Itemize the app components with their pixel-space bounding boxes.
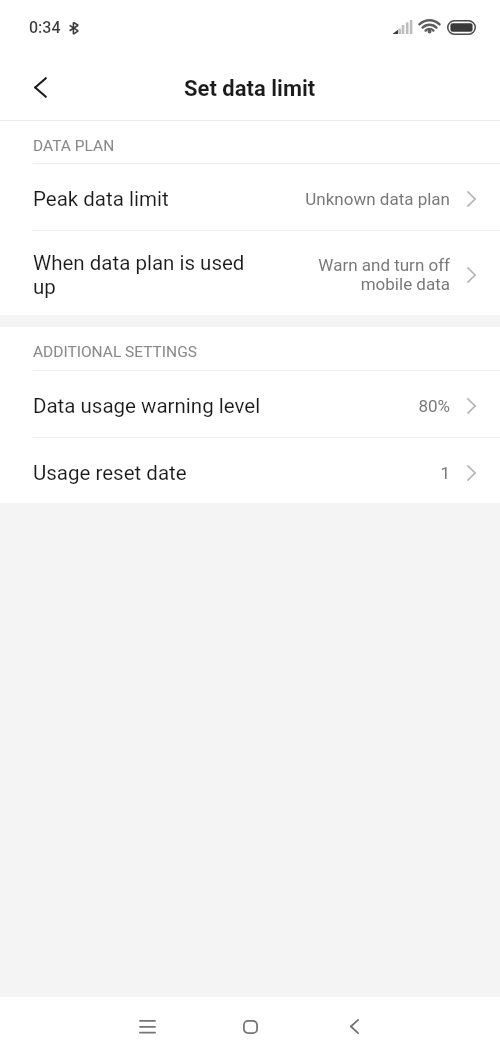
staticText: Set data limit <box>184 76 316 102</box>
staticText: 80% <box>418 396 450 416</box>
staticText: DATA PLAN <box>33 137 115 155</box>
button[interactable]: Back <box>320 997 389 1056</box>
staticText: Peak data limit <box>33 187 169 211</box>
staticText: Unknown data plan <box>305 189 450 209</box>
button[interactable]: Data usage warning level <box>0 371 500 438</box>
staticText: Warn and turn off mobile data <box>305 255 450 295</box>
button[interactable]: Home <box>216 997 284 1056</box>
staticText: Usage reset date <box>33 461 187 485</box>
staticText: ADDITIONAL SETTINGS <box>33 343 197 361</box>
staticText: Data usage warning level <box>33 394 261 418</box>
staticText: When data plan is used up <box>33 251 263 299</box>
button[interactable]: Recent apps <box>113 997 182 1056</box>
staticText: 0:34 <box>29 18 61 37</box>
button[interactable]: When data plan is used up <box>0 231 500 315</box>
staticText: 1 <box>440 463 450 483</box>
button[interactable]: Back <box>17 65 64 112</box>
button[interactable]: Usage reset date <box>0 438 500 503</box>
button[interactable]: Peak data limit <box>0 164 500 231</box>
